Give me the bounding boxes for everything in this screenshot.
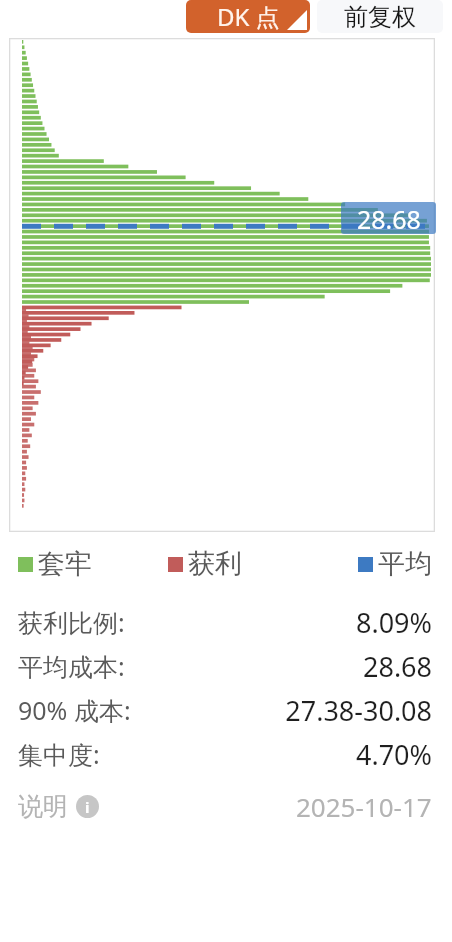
button[interactable]: 说明 info — [18, 791, 99, 822]
staticText: DK 点 — [217, 0, 280, 33]
staticText: 平均 — [378, 547, 432, 581]
button[interactable]: 平均 — [358, 547, 432, 581]
button[interactable]: 前复权 — [317, 0, 443, 33]
staticText: 8.09% — [355, 604, 432, 641]
staticText: 2025-10-17 — [296, 789, 432, 824]
staticText: 套牢 — [38, 547, 92, 581]
button[interactable]: 套牢 — [18, 547, 92, 581]
staticText: 平均成本: — [18, 649, 125, 683]
staticText: 4.70% — [355, 736, 432, 773]
staticText: 27.38-30.08 — [285, 692, 432, 729]
button[interactable]: DK 点 — [186, 0, 310, 33]
staticText: 90% 成本: — [18, 693, 131, 727]
staticText: i — [85, 797, 90, 817]
button[interactable]: 获利 — [168, 547, 242, 581]
staticText: 28.68 — [357, 202, 421, 234]
staticText: 28.68 — [362, 648, 432, 685]
staticText: 前复权 — [344, 2, 416, 32]
staticText: 获利比例: — [18, 605, 125, 639]
staticText: 集中度: — [18, 737, 100, 771]
staticText: 说明 — [18, 791, 68, 822]
staticText: 获利 — [188, 547, 242, 581]
